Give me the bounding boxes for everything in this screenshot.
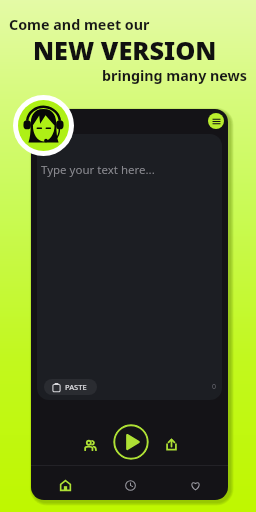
button[interactable]: History <box>117 472 143 498</box>
button[interactable]: Favorites <box>182 472 208 498</box>
staticText: Come and meet our <box>9 15 150 34</box>
button[interactable]: Share <box>157 430 185 458</box>
staticText: 0 <box>212 382 217 392</box>
button[interactable]: Menu <box>208 113 224 129</box>
staticText: Type your text here... <box>41 162 155 178</box>
staticText: PASTE <box>65 382 87 392</box>
button[interactable]: Play <box>113 424 149 460</box>
staticText: bringing many news <box>102 66 247 85</box>
button[interactable]: PASTE <box>44 379 97 395</box>
button[interactable]: Voices <box>76 431 104 459</box>
button[interactable]: Home <box>52 472 78 498</box>
staticText: NEW VERSION <box>33 33 217 67</box>
